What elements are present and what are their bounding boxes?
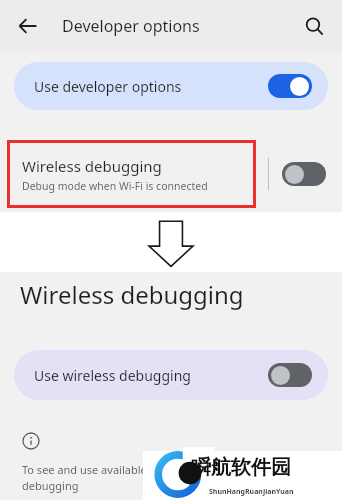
staticText: Developer options <box>62 15 200 37</box>
button[interactable]: Toggle off <box>268 363 312 387</box>
staticText: Use developer options <box>34 77 182 96</box>
button[interactable]: Toggle on <box>268 74 312 98</box>
button[interactable]: Use wireless debugging <box>14 350 328 400</box>
staticText: Wireless debugging <box>22 156 162 176</box>
staticText: 瞬航软件园 <box>191 455 291 480</box>
staticText: Use wireless debugging <box>34 366 191 385</box>
button[interactable]: Back <box>8 6 48 46</box>
staticText: Debug mode when Wi-Fi is connected <box>22 179 208 193</box>
staticText: ShunHangRuanJianYuan <box>209 487 294 497</box>
staticText: To see and use available devices, turn o… <box>22 462 277 493</box>
button[interactable]: Use developer options <box>14 62 328 110</box>
button[interactable]: Search <box>294 6 334 46</box>
button[interactable]: Toggle off <box>282 162 326 186</box>
staticText: Wireless debugging <box>20 278 244 311</box>
